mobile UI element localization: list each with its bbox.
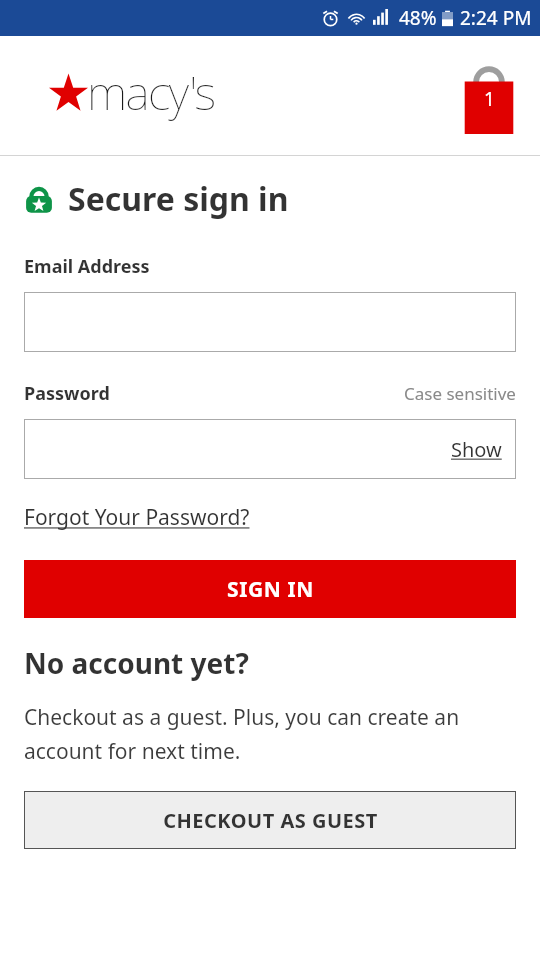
staticText: 1 — [484, 86, 495, 112]
staticText: Secure sign in — [68, 177, 289, 221]
staticText: No account yet? — [24, 644, 249, 682]
staticText: Password — [24, 381, 110, 406]
staticText: Case sensitive — [404, 382, 516, 405]
staticText: 48% — [399, 5, 437, 31]
button[interactable]: Forgot Your Password? — [24, 503, 250, 532]
staticText: SIGN IN — [227, 575, 314, 604]
staticText: CHECKOUT AS GUEST — [163, 807, 378, 834]
staticText: 2:24 PM — [460, 5, 532, 31]
staticText: Checkout as a guest. Plus, you can creat… — [24, 703, 516, 765]
button[interactable]: SIGN IN — [24, 560, 516, 618]
button[interactable]: Show — [451, 436, 502, 463]
button[interactable]: Password input — [24, 419, 516, 479]
button[interactable]: Email Address input — [24, 292, 516, 352]
staticText: Forgot Your Password? — [24, 503, 250, 532]
button[interactable]: Shopping bag, 1 item — [462, 59, 516, 134]
staticText: macy's — [87, 60, 215, 124]
staticText: Show — [451, 436, 502, 463]
button[interactable]: CHECKOUT AS GUEST — [24, 791, 516, 849]
staticText: Email Address — [24, 254, 150, 279]
